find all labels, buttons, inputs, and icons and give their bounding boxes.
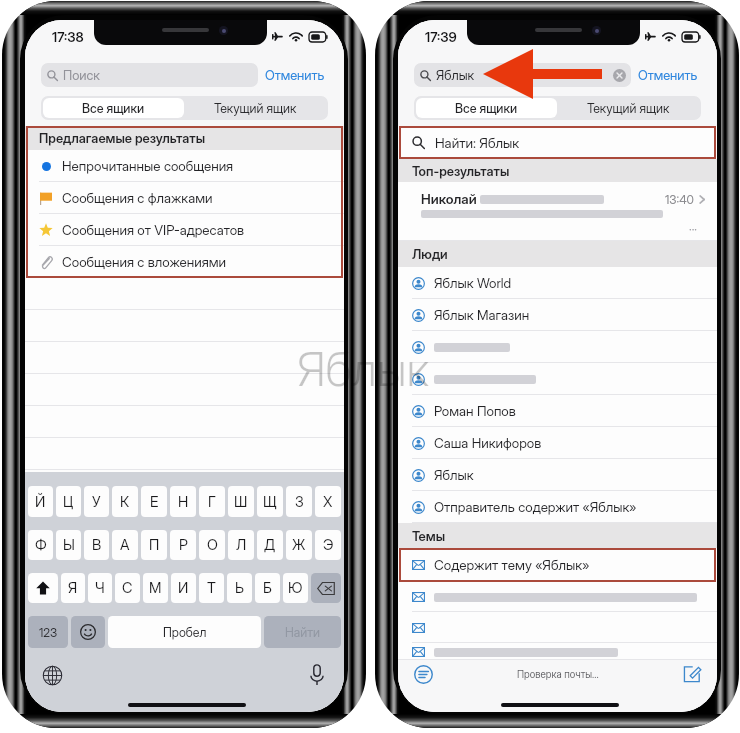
staticText: Пробел: [163, 625, 207, 640]
button[interactable]: Ш: [228, 486, 254, 517]
staticText: 17:38: [52, 29, 84, 45]
staticText: Б: [263, 579, 272, 597]
staticText: А: [120, 536, 130, 554]
button[interactable]: Диктовка: [309, 664, 325, 686]
button[interactable]: Б: [255, 573, 280, 603]
staticText: Сообщения от VIP-адресатов: [62, 222, 245, 238]
staticText: Ц: [63, 493, 74, 511]
button[interactable]: Все ящики: [43, 98, 184, 118]
button[interactable]: Яблык Магазин: [398, 299, 717, 331]
button[interactable]: Й: [28, 486, 53, 517]
staticText: 13:40: [665, 192, 694, 207]
button[interactable]: Яблык: [414, 63, 631, 87]
button[interactable]: Яблык: [398, 459, 717, 491]
button[interactable]: Shift: [28, 573, 58, 603]
button[interactable]: Удалить: [311, 573, 341, 603]
staticText: Ы: [63, 536, 75, 554]
button[interactable]: Ф: [28, 530, 53, 560]
button[interactable]: Я: [61, 573, 85, 603]
button[interactable]: Все ящики: [416, 98, 557, 118]
staticText: Отправитель содержит «Яблык»: [434, 499, 637, 515]
button[interactable]: Ь: [227, 573, 252, 603]
button[interactable]: Отправитель содержит «Яблык»: [398, 491, 717, 523]
staticText: Люди: [412, 246, 448, 262]
button[interactable]: Сообщения с флажками: [25, 182, 344, 214]
button[interactable]: О: [199, 530, 225, 560]
button[interactable]: Э: [315, 530, 341, 560]
button[interactable]: Ю: [283, 573, 308, 603]
staticText: Саша Никифоров: [434, 435, 542, 451]
button[interactable]: Очистить: [613, 69, 626, 82]
button[interactable]: Г: [199, 486, 225, 517]
button[interactable]: Л: [228, 530, 254, 560]
staticText: Топ-результаты: [412, 163, 510, 179]
button[interactable]: Непрочитанные сообщения: [25, 150, 344, 182]
button[interactable]: [398, 582, 717, 612]
button[interactable]: Р: [170, 530, 196, 560]
button[interactable]: Николай: [398, 182, 717, 241]
button[interactable]: С: [115, 573, 140, 603]
staticText: Роман Попов: [434, 403, 516, 419]
staticText: Все ящики: [455, 101, 518, 116]
button[interactable]: Сообщения с вложениями: [25, 246, 344, 278]
staticText: Ш: [234, 493, 248, 511]
button[interactable]: Эмодзи: [71, 616, 105, 648]
staticText: С: [122, 579, 133, 597]
staticText: Ь: [235, 579, 244, 597]
button[interactable]: 123: [28, 616, 68, 648]
staticText: ···: [689, 222, 697, 237]
staticText: Сообщения с флажками: [62, 190, 213, 206]
button[interactable]: З: [286, 486, 312, 517]
staticText: Текущий ящик: [214, 101, 297, 116]
button[interactable]: Роман Попов: [398, 395, 717, 427]
button[interactable]: Фильтр: [414, 665, 433, 684]
button[interactable]: П: [141, 530, 167, 560]
staticText: Х: [323, 493, 333, 511]
button[interactable]: А: [112, 530, 138, 560]
button[interactable]: Е: [141, 486, 167, 517]
button[interactable]: [398, 612, 717, 643]
staticText: Т: [207, 579, 216, 597]
button[interactable]: Яблык World: [398, 267, 717, 299]
button[interactable]: Ц: [56, 486, 81, 517]
button[interactable]: Ч: [88, 573, 112, 603]
button[interactable]: [398, 331, 717, 363]
button[interactable]: Сменить язык: [42, 665, 63, 686]
button[interactable]: Ж: [286, 530, 312, 560]
button[interactable]: Найти: Яблык: [398, 126, 717, 159]
button[interactable]: Х: [315, 486, 341, 517]
staticText: Я: [68, 579, 78, 597]
button[interactable]: [398, 363, 717, 395]
button[interactable]: Текущий ящик: [557, 98, 699, 118]
staticText: Николай: [421, 191, 477, 207]
staticText: Д: [264, 536, 276, 554]
staticText: В: [92, 536, 102, 554]
staticText: Сообщения с вложениями: [62, 254, 227, 270]
staticText: Э: [323, 536, 334, 554]
button[interactable]: В: [84, 530, 109, 560]
button[interactable]: У: [84, 486, 109, 517]
staticText: Проверка почты...: [517, 668, 599, 680]
button[interactable]: Отменить: [638, 63, 698, 87]
button[interactable]: Найти: [264, 616, 341, 648]
staticText: 123: [39, 625, 58, 640]
staticText: Отменить: [265, 67, 325, 83]
button[interactable]: Содержит тему «Яблык»: [398, 548, 717, 582]
button[interactable]: Текущий ящик: [184, 98, 326, 118]
button[interactable]: Саша Никифоров: [398, 427, 717, 459]
button[interactable]: Т: [199, 573, 224, 603]
button[interactable]: Н: [170, 486, 196, 517]
button[interactable]: Новое письмо: [683, 665, 701, 683]
button[interactable]: Ы: [56, 530, 81, 560]
button[interactable]: Сообщения от VIP-адресатов: [25, 214, 344, 246]
button[interactable]: Отменить: [265, 63, 325, 87]
staticText: Р: [179, 536, 188, 554]
button[interactable]: Д: [257, 530, 283, 560]
button[interactable]: К: [112, 486, 138, 517]
staticText: П: [149, 536, 160, 554]
button[interactable]: Поиск: [41, 63, 258, 87]
button[interactable]: Пробел: [108, 616, 261, 648]
button[interactable]: И: [171, 573, 196, 603]
button[interactable]: Щ: [257, 486, 283, 517]
button[interactable]: М: [143, 573, 168, 603]
